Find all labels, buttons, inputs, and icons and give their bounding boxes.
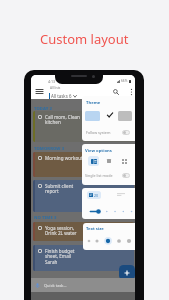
button[interactable]: Toggle	[122, 173, 130, 178]
button[interactable]: List view	[103, 156, 114, 166]
button[interactable]: Board view	[88, 156, 99, 166]
staticText: Fitness	[119, 237, 131, 241]
button[interactable]: Submit client report	[33, 180, 134, 212]
button[interactable]: Grid view	[119, 156, 130, 166]
button[interactable]: 20	[87, 191, 101, 199]
staticText: All lists	[50, 86, 61, 90]
staticText: Yoga session, Drink 2L water	[45, 225, 83, 237]
staticText: 07:00 AM	[114, 162, 131, 167]
staticText: Morning workout	[45, 155, 83, 161]
staticText: Follow system	[86, 130, 111, 135]
button[interactable]: Follow system	[86, 128, 130, 137]
staticText: Quick task...	[44, 283, 67, 288]
staticText: Personal	[117, 137, 131, 142]
button[interactable]: Quick task...	[31, 278, 135, 292]
button[interactable]: Text size option	[93, 237, 101, 245]
button[interactable]: Light theme	[85, 111, 100, 121]
staticText: TODAY 2	[34, 106, 53, 112]
button[interactable]: Dark theme	[118, 111, 132, 121]
button[interactable]: Toggle	[122, 130, 130, 135]
staticText: View options	[85, 148, 112, 154]
staticText: TOMORROW 3	[34, 146, 65, 152]
button[interactable]: Morning workout	[33, 152, 134, 177]
button[interactable]: Call mom, Clean kitchen	[33, 111, 134, 142]
staticText: Fitness	[119, 172, 131, 177]
staticText: Custom layout	[40, 30, 129, 48]
button[interactable]: Single list mode	[85, 171, 130, 180]
staticText: Submit client report	[45, 183, 83, 195]
staticText: 4:13	[48, 79, 56, 84]
staticText: 20	[94, 193, 99, 198]
button[interactable]: Text size option	[125, 237, 133, 245]
staticText: 07:00 PM	[114, 127, 131, 132]
staticText: Finish budget sheet, Email Sarah	[45, 248, 83, 266]
staticText: In 2 h	[120, 132, 131, 137]
button[interactable]: More options	[126, 85, 135, 98]
staticText: Work	[122, 207, 131, 212]
staticText: All tasks 6	[51, 93, 72, 99]
staticText: Theme	[86, 100, 101, 106]
staticText: Text size	[86, 226, 104, 232]
staticText: Call mom, Clean kitchen	[45, 114, 83, 126]
staticText: Work	[122, 266, 131, 271]
button[interactable]: Yoga session, Drink 2L water	[33, 222, 134, 241]
button[interactable]: All tasks 6	[49, 92, 77, 99]
button[interactable]: Finish budget sheet, Email Sarah	[33, 245, 134, 271]
button[interactable]: Text size option	[85, 237, 93, 245]
button[interactable]: Add task	[119, 265, 135, 280]
button[interactable]: Text size option	[104, 237, 112, 245]
button[interactable]: Slider	[82, 208, 135, 215]
staticText: Single list mode	[85, 173, 113, 178]
staticText: NO TIME 3	[34, 215, 57, 221]
button[interactable]: Menu	[32, 85, 46, 98]
button[interactable]: Search	[110, 85, 122, 98]
staticText: 66%	[121, 79, 128, 83]
button[interactable]: Text size option	[115, 237, 123, 245]
